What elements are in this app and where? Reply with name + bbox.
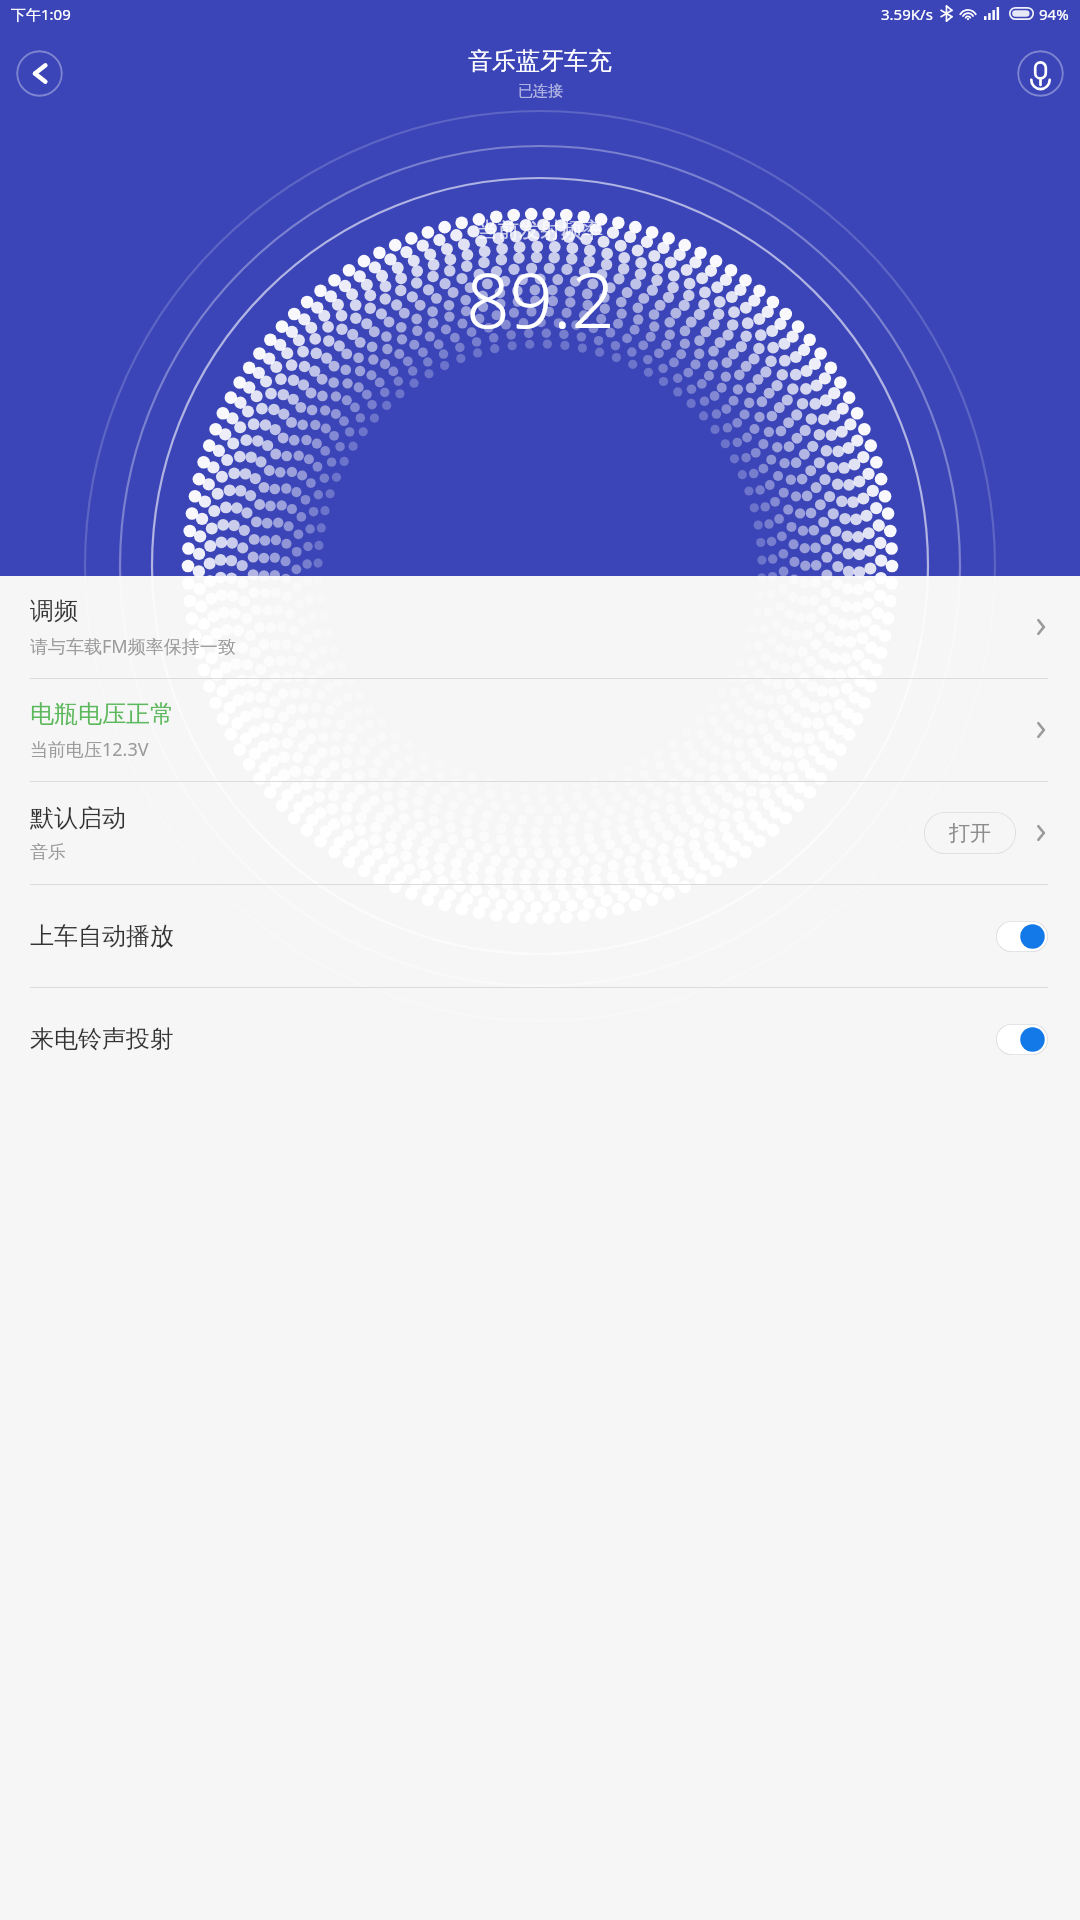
staticText: 电瓶电压正常: [30, 699, 174, 729]
staticText: 打开: [949, 820, 991, 846]
staticText: 音乐蓝牙车充: [468, 46, 612, 76]
staticText: 请与车载FM频率保持一致: [30, 634, 236, 659]
staticText: 上车自动播放: [30, 921, 996, 951]
button[interactable]: 电瓶电压正常: [0, 679, 1080, 781]
button[interactable]: 上车自动播放: [996, 921, 1048, 952]
staticText: 调频: [30, 596, 78, 626]
button[interactable]: Voice input: [1017, 50, 1064, 97]
button[interactable]: 打开: [924, 812, 1016, 854]
staticText: 音乐: [30, 841, 66, 864]
staticText: 3.59K/s: [881, 4, 933, 24]
staticText: 下午1:09: [11, 4, 71, 24]
button[interactable]: 调频: [0, 576, 1080, 678]
staticText: 来电铃声投射: [30, 1024, 996, 1054]
staticText: 89.2: [466, 247, 615, 351]
staticText: 当前发射频率: [477, 217, 603, 243]
button[interactable]: 来电铃声投射: [996, 1024, 1048, 1055]
button[interactable]: 默认启动: [0, 782, 1080, 884]
button[interactable]: 来电铃声投射: [0, 988, 1080, 1090]
button[interactable]: 上车自动播放: [0, 885, 1080, 987]
staticText: 已连接: [518, 82, 563, 101]
staticText: 94%: [1039, 4, 1069, 24]
staticText: 当前电压12.3V: [30, 737, 149, 762]
staticText: 默认启动: [30, 803, 126, 833]
button[interactable]: Back: [16, 50, 63, 97]
